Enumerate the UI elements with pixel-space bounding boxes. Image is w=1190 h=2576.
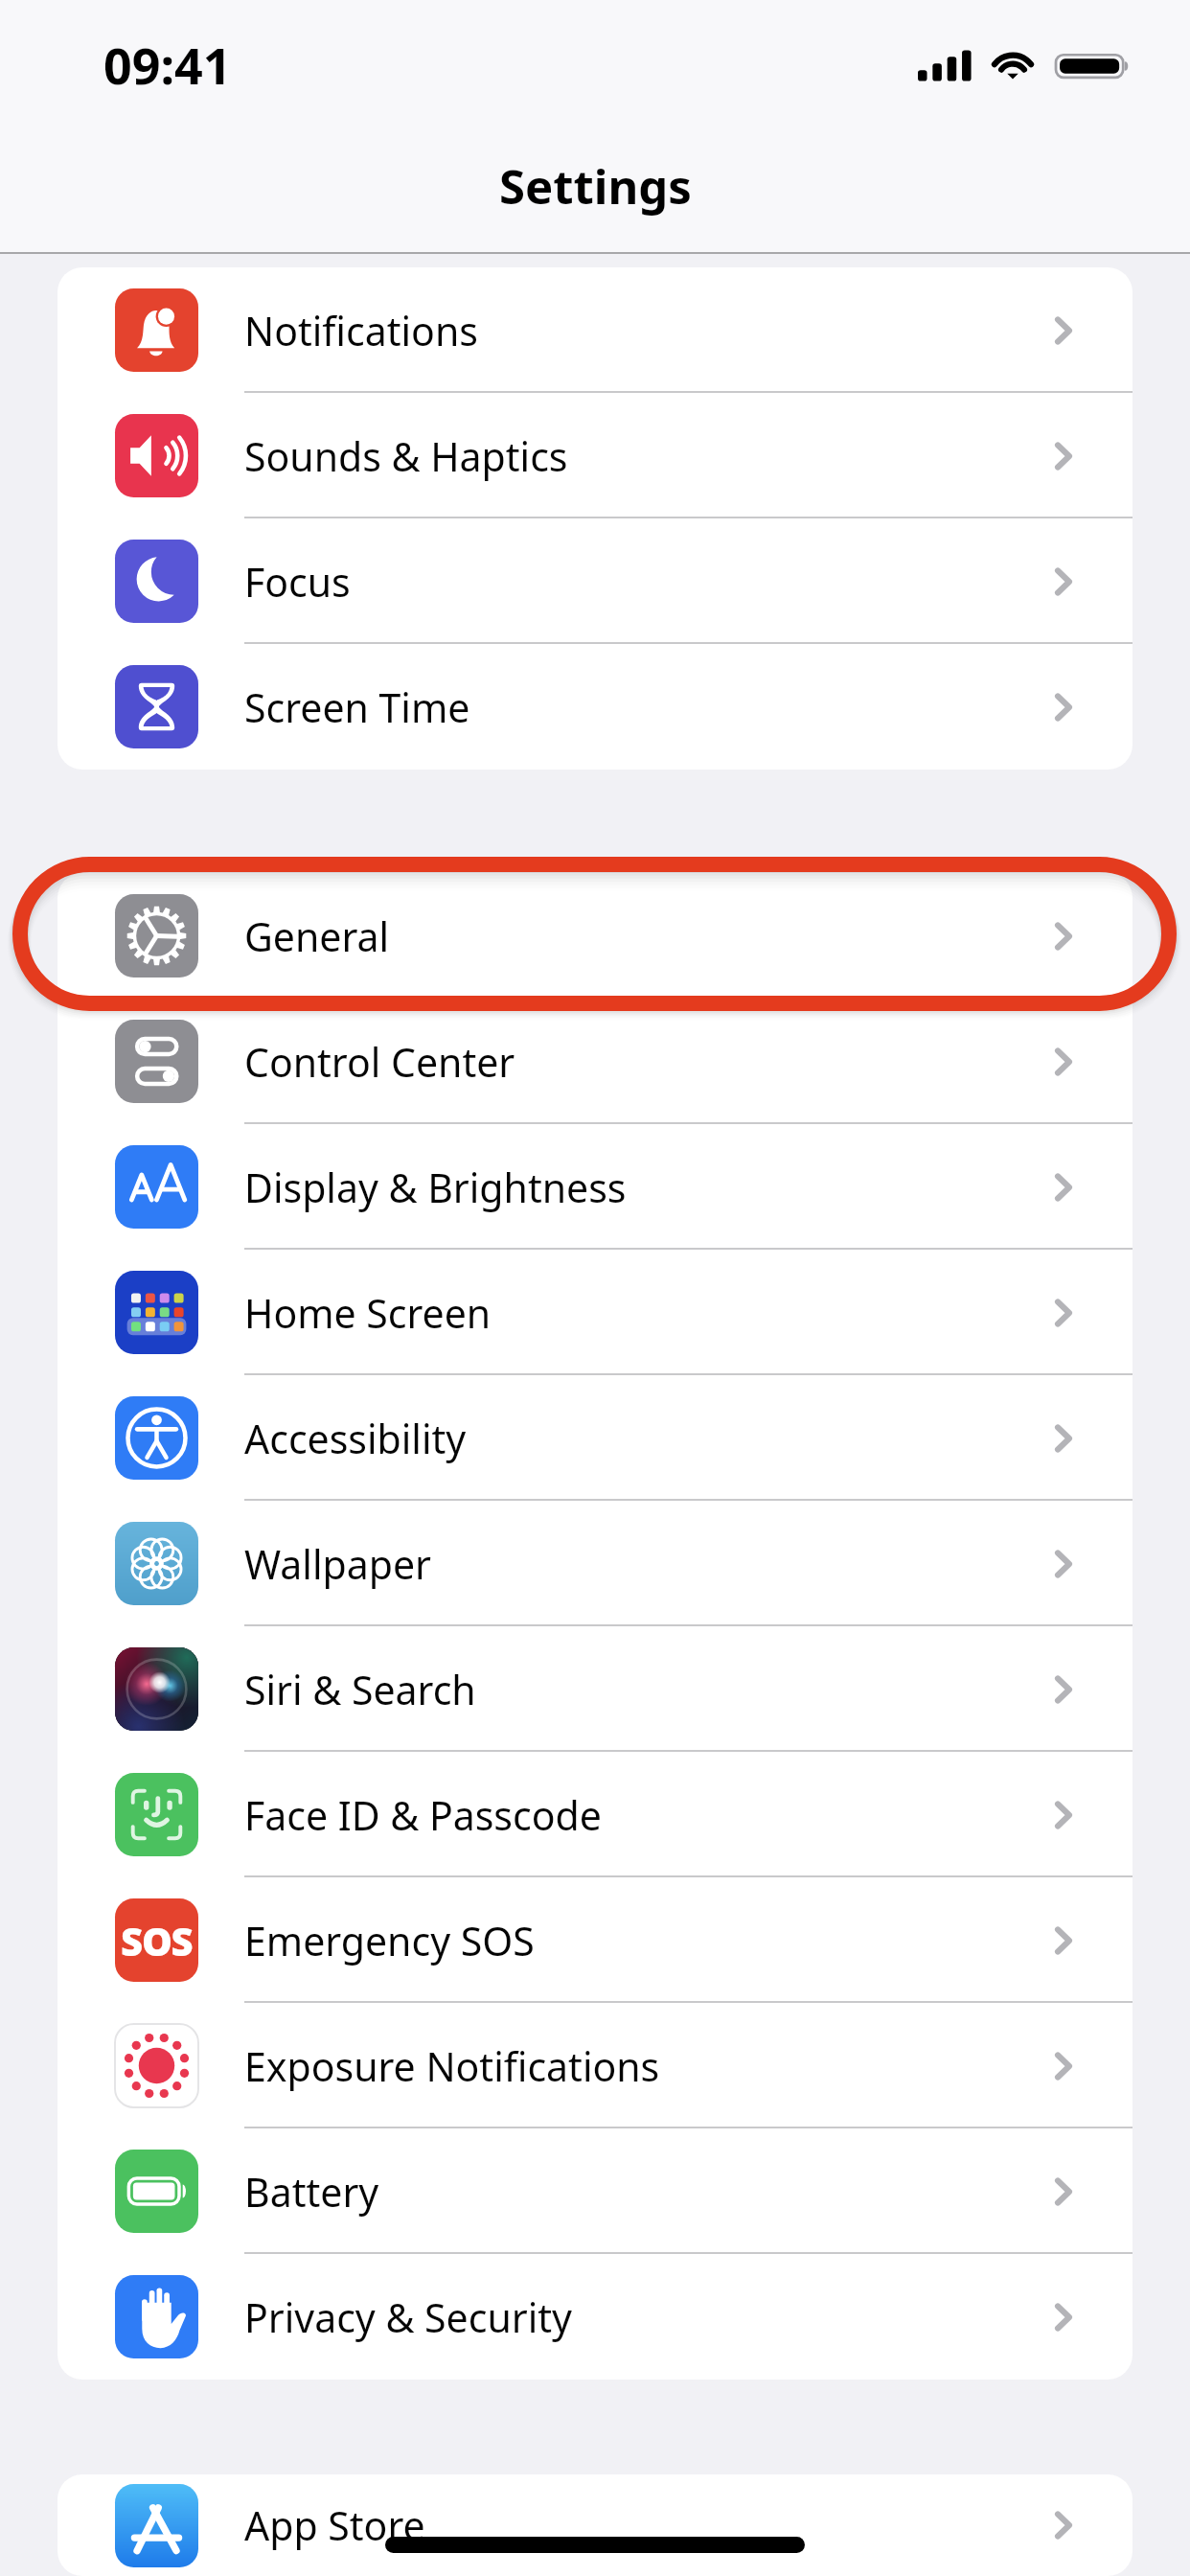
button[interactable]: Screen Time	[57, 644, 1133, 770]
staticText: General	[244, 909, 390, 963]
button[interactable]: Siri & Search	[57, 1626, 1133, 1752]
button[interactable]: Focus	[57, 518, 1133, 644]
button[interactable]: Privacy & Security	[57, 2254, 1133, 2380]
staticText: Wallpaper	[244, 1537, 431, 1591]
button[interactable]: SOS	[57, 1877, 1133, 2003]
staticText: Accessibility	[244, 1412, 467, 1465]
staticText: Display & Brightness	[244, 1161, 627, 1214]
staticText: SOS	[121, 1915, 193, 1966]
button[interactable]: Control Center	[57, 999, 1133, 1124]
button[interactable]: Home Screen	[57, 1250, 1133, 1375]
staticText: Exposure Notifications	[244, 2039, 660, 2093]
button[interactable]: Battery	[57, 2128, 1133, 2254]
staticText: Emergency SOS	[244, 1914, 535, 1967]
staticText: Home Screen	[244, 1286, 492, 1340]
staticText: App Store	[244, 2498, 425, 2552]
staticText: 09:41	[103, 31, 232, 99]
staticText: Notifications	[244, 304, 478, 357]
other: Cellular signal strength	[918, 46, 972, 86]
staticText: Control Center	[244, 1035, 515, 1089]
staticText: Privacy & Security	[244, 2290, 572, 2344]
staticText: Face ID & Passcode	[244, 1788, 602, 1842]
button[interactable]: Accessibility	[57, 1375, 1133, 1501]
button[interactable]: Notifications	[57, 267, 1133, 393]
button[interactable]: Sounds & Haptics	[57, 393, 1133, 518]
button[interactable]: General	[57, 873, 1133, 999]
button[interactable]: Display & Brightness	[57, 1124, 1133, 1250]
staticText: Siri & Search	[244, 1663, 476, 1716]
staticText: Settings	[499, 154, 692, 218]
other: Wi-Fi connected	[991, 46, 1035, 86]
button[interactable]: Face ID & Passcode	[57, 1752, 1133, 1877]
staticText: Battery	[244, 2165, 379, 2219]
other: Battery full	[1056, 46, 1131, 86]
button[interactable]: Exposure Notifications	[57, 2003, 1133, 2128]
staticText: Screen Time	[244, 680, 470, 734]
staticText: Focus	[244, 555, 351, 609]
staticText: Sounds & Haptics	[244, 429, 568, 483]
button[interactable]: Wallpaper	[57, 1501, 1133, 1626]
button[interactable]: App Store	[57, 2474, 1133, 2576]
